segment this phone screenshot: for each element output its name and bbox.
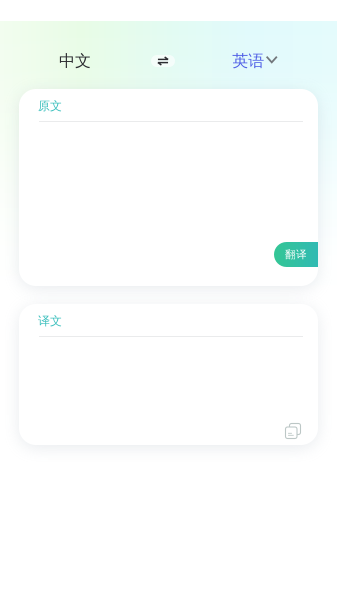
button[interactable]: 中文: [41, 46, 109, 76]
staticText: 译文: [38, 314, 62, 328]
button[interactable]: 翻译: [274, 242, 332, 267]
staticText: 中文: [59, 51, 91, 71]
staticText: 翻译: [285, 248, 307, 261]
staticText: 原文: [38, 99, 62, 113]
button[interactable]: 英语: [221, 46, 289, 76]
button[interactable]: Copy translation: [280, 418, 306, 444]
button[interactable]: Swap languages: [141, 47, 189, 75]
staticText: 英语: [232, 51, 264, 71]
